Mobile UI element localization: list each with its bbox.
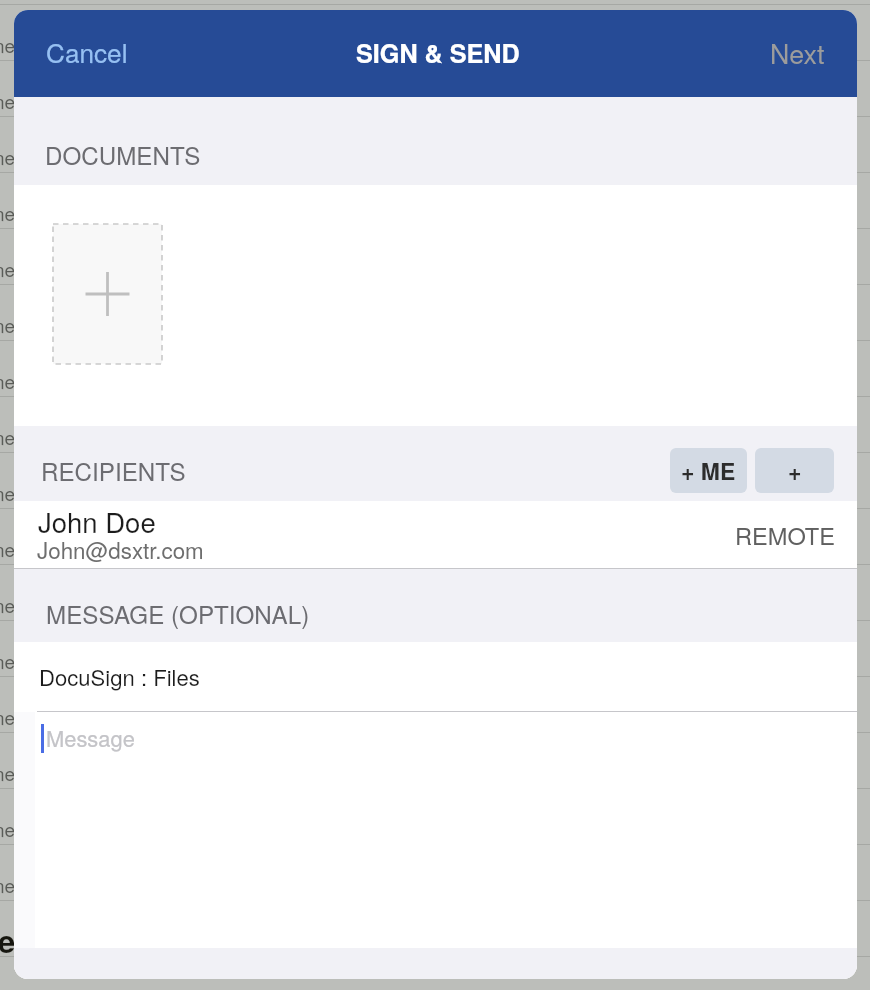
button[interactable]: + ME [670, 448, 747, 493]
staticText: ne [0, 479, 16, 506]
staticText: John Doe [38, 501, 156, 540]
staticText: ne [0, 647, 16, 674]
staticText: Message [46, 722, 135, 753]
staticText: John@dsxtr.com [37, 533, 204, 565]
staticText: ne [0, 255, 16, 282]
button[interactable]: Next [750, 24, 857, 83]
button[interactable]: Add document [53, 224, 162, 364]
staticText: + ME [681, 454, 736, 487]
staticText: DOCUMENTS [45, 137, 201, 172]
staticText: ne [0, 591, 16, 618]
staticText: ne [0, 199, 16, 226]
staticText: e [0, 918, 16, 962]
staticText: ne [0, 423, 16, 450]
staticText: REMOTE [735, 518, 835, 552]
staticText: RECIPIENTS [41, 453, 186, 488]
staticText: ne [0, 759, 16, 786]
staticText: MESSAGE (OPTIONAL) [46, 596, 310, 631]
staticText: DocuSign : Files [39, 661, 200, 693]
button[interactable]: Message [14, 712, 857, 948]
staticText: Cancel [46, 33, 128, 71]
staticText: ne [0, 367, 16, 394]
staticText: ne [0, 535, 16, 562]
staticText: ne [0, 31, 16, 58]
staticText: ne [0, 311, 16, 338]
staticText: ne [0, 815, 16, 842]
staticText: SIGN & SEND [356, 35, 520, 71]
staticText: + [788, 454, 802, 487]
staticText: ne [0, 87, 16, 114]
staticText: ne [0, 703, 16, 730]
staticText: ne [0, 871, 16, 898]
button[interactable]: + [755, 448, 834, 493]
staticText: Next [770, 33, 825, 71]
button[interactable]: John Doe [14, 501, 857, 569]
button[interactable]: Cancel [14, 24, 148, 83]
staticText: ne [0, 143, 16, 170]
button[interactable]: DocuSign : Files [14, 642, 857, 712]
